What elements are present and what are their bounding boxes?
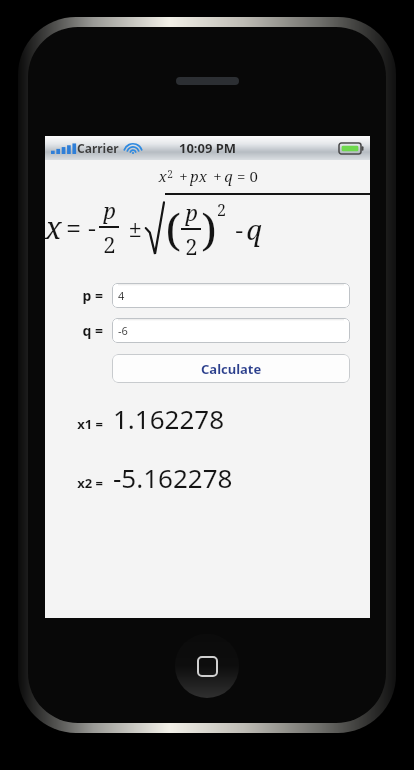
button[interactable]: 4 (112, 283, 350, 308)
staticText: x (158, 166, 167, 186)
staticText: = (62, 209, 85, 246)
staticText: = 0 (233, 166, 258, 186)
staticText: x1 = (45, 415, 103, 433)
staticText: 2 (103, 229, 116, 259)
staticText: 4 (118, 288, 125, 303)
staticText: 2 (217, 199, 226, 221)
staticText: q = (45, 321, 103, 340)
staticText: x2 = (45, 474, 103, 492)
staticText: 2 (185, 231, 198, 261)
staticText: p (103, 195, 116, 225)
staticText: q (246, 210, 262, 248)
staticText: 10:09 PM (179, 139, 237, 157)
staticText: p = (45, 286, 103, 305)
staticText: Carrier (77, 140, 119, 156)
staticText: - (85, 211, 99, 244)
button[interactable]: Home (175, 634, 239, 698)
staticText: -5.162278 (113, 460, 233, 495)
staticText: 1.162278 (113, 401, 225, 436)
staticText: -6 (118, 323, 128, 338)
staticText: ( (165, 199, 181, 259)
staticText: p (185, 197, 198, 227)
staticText: 2 (167, 167, 173, 181)
staticText: ± (119, 211, 145, 244)
button[interactable]: Calculate (112, 354, 350, 383)
staticText: + (207, 166, 224, 186)
button[interactable]: -6 (112, 318, 350, 343)
staticText: Calculate (201, 360, 262, 378)
staticText: ) (201, 199, 217, 259)
staticText: + (173, 166, 190, 186)
staticText: x (45, 207, 62, 248)
staticText: q (224, 166, 233, 186)
staticText: - (226, 213, 246, 246)
staticText: px (190, 166, 207, 186)
